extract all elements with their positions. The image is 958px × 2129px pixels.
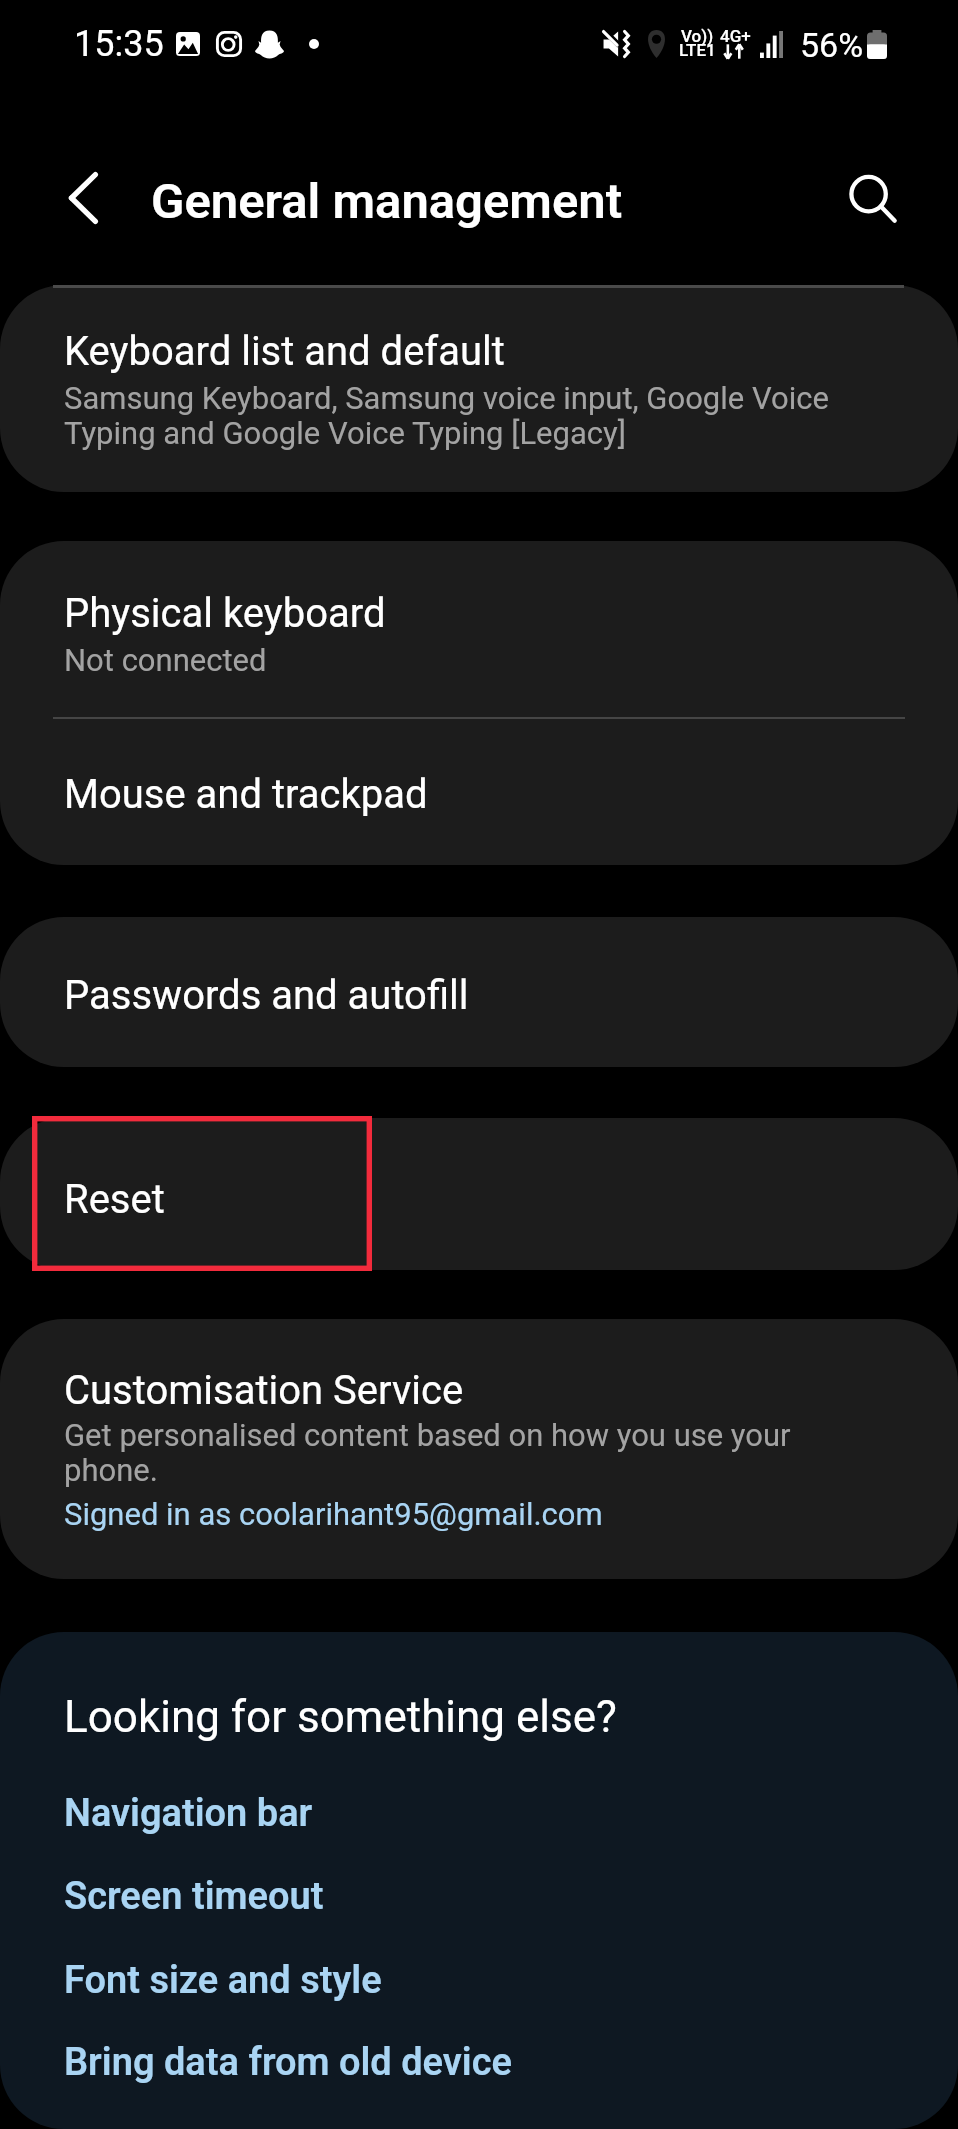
staticText: Reset	[64, 1176, 165, 1223]
button[interactable]: Physical keyboard	[0, 541, 958, 717]
staticText: 15:35	[74, 23, 164, 65]
staticText: Signed in as coolarihant95@gmail.com	[64, 1496, 603, 1532]
button[interactable]: Keyboard list and default	[0, 285, 958, 492]
staticText: Passwords and autofill	[64, 972, 469, 1019]
staticText: Font size and style	[64, 1958, 382, 2003]
staticText: Keyboard list and default	[64, 328, 505, 375]
button[interactable]: Back	[39, 152, 131, 244]
staticText: Screen timeout	[64, 1874, 324, 1919]
button[interactable]: Navigation bar	[64, 1791, 313, 1836]
button[interactable]: Mouse and trackpad	[0, 719, 958, 865]
staticText: General management	[151, 173, 623, 230]
button[interactable]: Screen timeout	[64, 1874, 324, 1919]
button[interactable]: Passwords and autofill	[0, 917, 958, 1067]
staticText: Physical keyboard	[64, 590, 386, 637]
staticText: Samsung Keyboard, Samsung voice input, G…	[64, 380, 829, 451]
button[interactable]: Bring data from old device	[64, 2040, 512, 2085]
staticText: Navigation bar	[64, 1791, 313, 1836]
button[interactable]: Customisation Service	[0, 1319, 958, 1579]
staticText: Looking for something else?	[64, 1691, 617, 1743]
staticText: Get personalised content based on how yo…	[64, 1417, 791, 1488]
button[interactable]: Font size and style	[64, 1958, 382, 2003]
staticText: Vo))	[681, 26, 714, 46]
staticText: Bring data from old device	[64, 2040, 512, 2085]
staticText: Mouse and trackpad	[64, 771, 428, 818]
staticText: Not connected	[64, 642, 267, 678]
staticText: 4G+	[720, 26, 751, 46]
button[interactable]: Search	[823, 148, 915, 240]
staticText: 56%	[800, 25, 864, 65]
staticText: Customisation Service	[64, 1367, 464, 1414]
staticText: LTE1	[679, 40, 716, 60]
button[interactable]: Reset	[0, 1118, 958, 1270]
